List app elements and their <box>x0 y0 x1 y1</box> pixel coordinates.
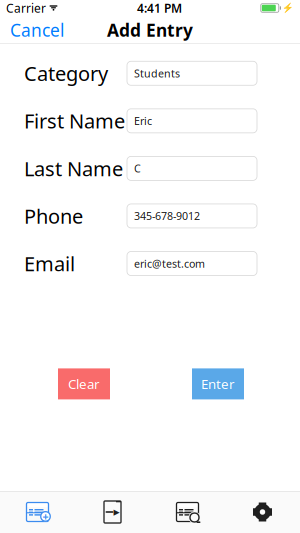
staticText: Enter <box>201 375 235 393</box>
staticText: + <box>42 509 48 523</box>
staticText: Clear <box>68 375 100 393</box>
button[interactable]: Enter <box>192 368 244 399</box>
staticText: Last Name <box>24 155 123 182</box>
button[interactable]: eric@test.com <box>127 251 257 275</box>
button[interactable]: Eric <box>127 109 257 133</box>
button[interactable]: Settings <box>225 492 300 532</box>
button[interactable]: Cancel <box>0 12 74 47</box>
staticText: Carrier <box>6 0 46 16</box>
button[interactable]: Students <box>127 61 257 85</box>
button[interactable]: Search <box>150 492 225 532</box>
staticText: Cancel <box>10 18 64 41</box>
staticText: Add Entry <box>107 18 193 41</box>
button[interactable]: Export <box>75 492 150 532</box>
button[interactable]: 345-678-9012 <box>127 204 257 228</box>
staticText: eric@test.com <box>134 256 205 271</box>
staticText: ▶ <box>113 507 119 517</box>
staticText: First Name <box>24 108 125 134</box>
staticText: Phone <box>24 203 83 229</box>
staticText: C <box>134 161 141 175</box>
button[interactable]: Clear <box>58 368 110 399</box>
button[interactable]: C <box>127 156 257 180</box>
staticText: 345-678-9012 <box>134 209 200 223</box>
staticText: Eric <box>134 114 152 128</box>
button[interactable]: Add Entry <box>0 492 75 532</box>
staticText: Email <box>24 250 75 277</box>
staticText: ⚡ <box>282 3 294 13</box>
staticText: Category <box>24 60 108 87</box>
staticText: Students <box>134 66 180 80</box>
staticText: 4:41 PM <box>137 0 182 16</box>
